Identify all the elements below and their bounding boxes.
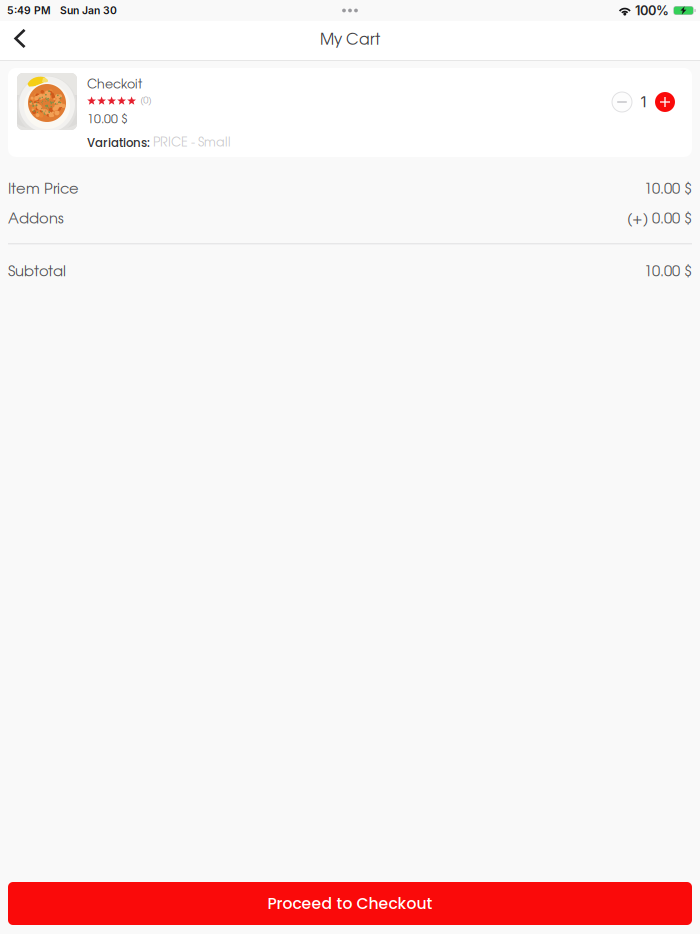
staticText: Proceed to Checkout: [267, 893, 432, 914]
staticText: 100%: [635, 3, 669, 18]
staticText: (+) 0.00 $: [627, 213, 692, 226]
staticText: Variations:: [87, 135, 150, 151]
staticText: Addons: [8, 213, 64, 226]
staticText: Checkoit: [87, 79, 142, 91]
staticText: My Cart: [320, 33, 380, 48]
button[interactable]: Increase quantity: [655, 92, 675, 112]
button[interactable]: Decrease quantity: [612, 92, 632, 112]
staticText: (0): [140, 97, 151, 105]
staticText: 5:49 PM: [7, 4, 51, 17]
staticText: Sun Jan 30: [60, 4, 117, 17]
staticText: 10.00 $: [87, 114, 128, 126]
staticText: Subtotal: [8, 265, 66, 279]
staticText: Item Price: [8, 183, 79, 197]
button[interactable]: Back: [0, 24, 39, 57]
staticText: 10.00 $: [644, 183, 692, 197]
button[interactable]: Proceed to Checkout: [8, 882, 692, 925]
staticText: 1: [640, 93, 646, 111]
staticText: 10.00 $: [644, 265, 692, 279]
staticText: PRICE - Small: [153, 137, 231, 149]
